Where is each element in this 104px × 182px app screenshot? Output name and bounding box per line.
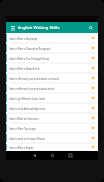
staticText: How to Write a Report [9,145,60,150]
staticText: How to Write a Five Paragraph Essay [9,56,60,61]
staticText: English Writing Skills [18,25,60,31]
staticText: How to Write an Sentences [9,116,60,121]
button[interactable]: Menu [9,24,17,32]
button[interactable]: How to Write Topic page [6,124,98,132]
button[interactable]: Recents [66,151,74,159]
staticText: How to effectively use punctuation conti… [9,76,60,81]
button[interactable]: How to effectively use punctuation conti… [6,74,98,82]
button[interactable]: How to write a Literature Review [6,134,98,142]
staticText: How to get Effective Cover Letter [9,96,60,101]
staticText: How to Write a News Article [9,66,60,71]
button[interactable]: How to Write a Five Paragraph Essay [6,54,98,62]
staticText: How to Write a Descriptive Paragraph [9,46,60,51]
staticText: How to write Acknowledgements [9,106,60,111]
button[interactable]: How to Write a Descriptive Paragraph [6,44,98,52]
button[interactable]: How to Write a Biography [6,34,98,42]
button[interactable]: How to Write an Sentences [6,114,98,122]
button[interactable]: How to write Acknowledgements [6,104,98,112]
button[interactable]: Back [30,151,38,159]
button[interactable]: How to effectively use punctuation marks [6,84,98,92]
button[interactable]: How to Write a News Article [6,64,98,72]
staticText: How to write a Literature Review [9,136,60,141]
button[interactable]: How to get Effective Cover Letter [6,94,98,102]
button[interactable]: Home [48,151,56,159]
button[interactable]: How to Write a Report [6,144,98,150]
staticText: How to effectively use punctuation marks [9,86,60,91]
staticText: How to Write a Biography [9,36,60,41]
staticText: How to Write Topic page [9,126,60,131]
button[interactable]: Search [87,24,95,32]
